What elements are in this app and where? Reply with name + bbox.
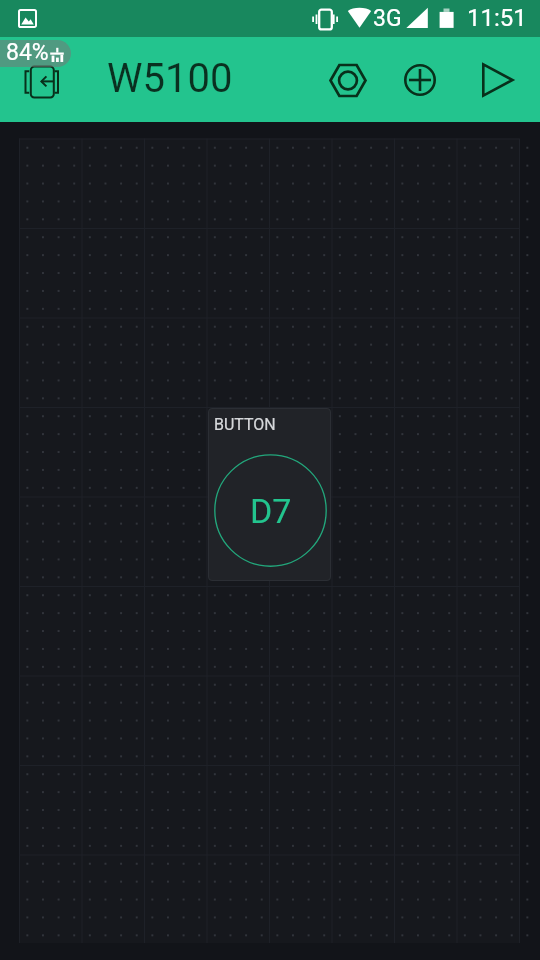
staticText: 11:51 — [467, 4, 527, 32]
button[interactable]: BUTTON — [208, 408, 331, 581]
button[interactable]: Add widget — [392, 52, 448, 108]
button[interactable]: Back — [13, 52, 69, 108]
button[interactable]: Play — [470, 52, 526, 108]
button[interactable]: 84% — [0, 40, 71, 67]
staticText: BUTTON — [214, 415, 276, 434]
staticText: 3G — [373, 5, 402, 32]
staticText: D7 — [250, 491, 292, 531]
staticText: 84% — [6, 40, 49, 66]
staticText: W5100 — [107, 55, 233, 102]
button[interactable]: Settings — [320, 52, 376, 108]
